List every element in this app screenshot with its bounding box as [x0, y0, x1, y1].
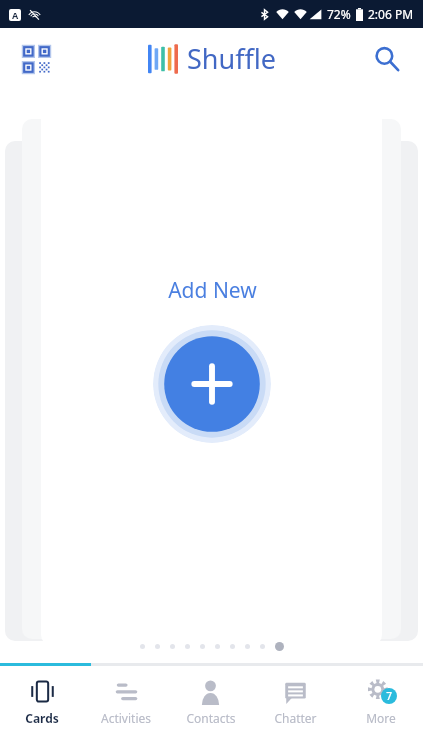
staticText: Cards [25, 710, 59, 726]
staticText: More [366, 710, 396, 726]
staticText: 2:06 PM [368, 6, 414, 22]
staticText: 72% [327, 6, 351, 22]
staticText: Contacts [186, 710, 236, 726]
staticText: Shuffle [187, 40, 276, 77]
button[interactable]: Add New [41, 97, 382, 645]
staticText: Add New [168, 276, 257, 305]
staticText: A [12, 9, 19, 21]
button[interactable]: Contacts [168, 666, 253, 739]
button[interactable]: Cards [0, 666, 84, 739]
staticText: Chatter [274, 710, 317, 726]
button[interactable]: Activities [84, 666, 168, 739]
button[interactable]: 7 [338, 666, 423, 739]
staticText: 7 [386, 689, 392, 703]
button[interactable]: Add new card [153, 325, 271, 443]
button[interactable]: Search [365, 37, 409, 81]
staticText: Activities [101, 710, 151, 726]
button[interactable]: Scan QR code [14, 37, 58, 81]
button[interactable]: Chatter [253, 666, 338, 739]
